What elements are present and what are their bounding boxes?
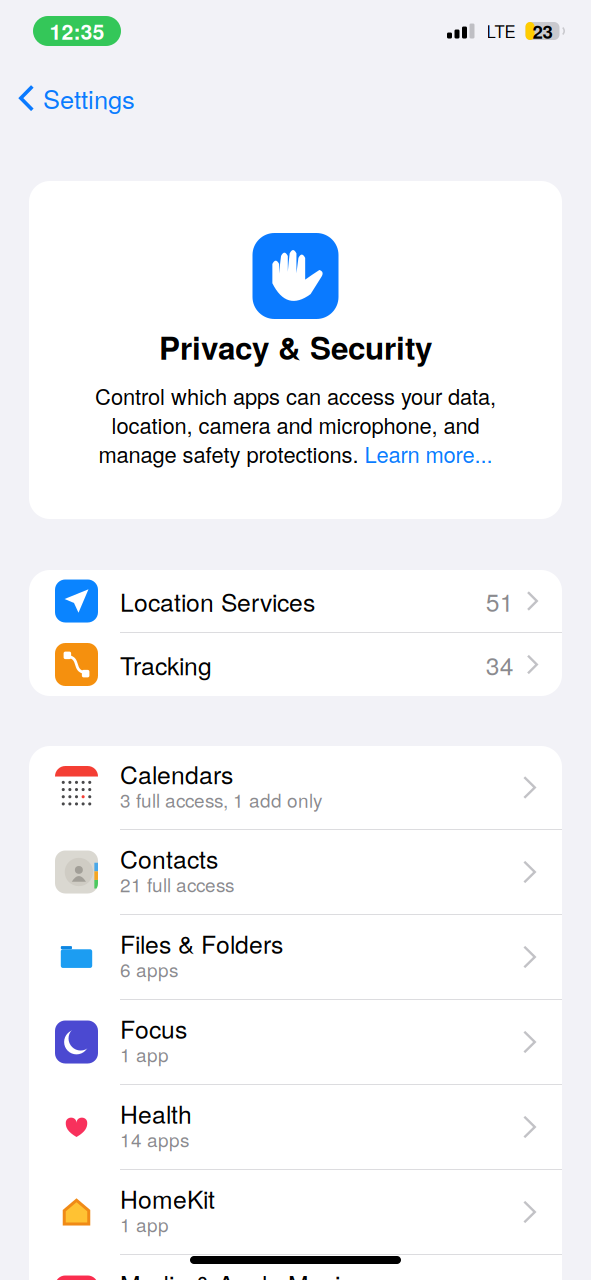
staticText: 14 apps <box>120 1125 189 1153</box>
staticText: Focus <box>120 1010 187 1046</box>
staticText: HomeKit <box>120 1180 215 1216</box>
staticText: 3 full access, 1 add only <box>120 786 322 813</box>
staticText: LTE <box>486 19 515 43</box>
staticText: Calendars <box>120 756 233 791</box>
staticText: Media & Apple Music <box>120 1265 352 1280</box>
staticText: 1 app <box>120 1210 169 1238</box>
staticText: Privacy & Security <box>159 324 432 370</box>
button[interactable]: Settings <box>0 62 149 129</box>
staticText: 6 apps <box>120 955 178 983</box>
staticText: Learn more... <box>364 438 492 469</box>
staticText: location, camera and microphone, and <box>111 409 479 440</box>
staticText: 51 <box>486 583 514 619</box>
staticText: Settings <box>43 80 135 116</box>
staticText: Control which apps can access your data, <box>95 380 496 411</box>
button[interactable]: Files & Folders <box>29 915 562 999</box>
staticText: 21 full access <box>120 870 234 898</box>
button[interactable]: Calendars <box>29 746 562 829</box>
staticText: Health <box>120 1095 192 1131</box>
staticText: Files & Folders <box>120 925 283 961</box>
staticText: 1 app <box>120 1040 169 1068</box>
button[interactable]: HomeKit <box>29 1170 562 1254</box>
button[interactable]: Contacts <box>29 830 562 914</box>
button[interactable]: Focus <box>29 1000 562 1084</box>
staticText: 12:35 <box>49 16 104 46</box>
staticText: manage safety protections. <box>98 438 364 469</box>
button[interactable]: Location Services <box>29 570 562 632</box>
staticText: Contacts <box>120 840 218 876</box>
staticText: 23 <box>532 18 552 44</box>
staticText: Location Services <box>120 583 315 619</box>
button[interactable]: Health <box>29 1085 562 1169</box>
button[interactable]: Tracking <box>29 633 562 696</box>
staticText: Tracking <box>120 647 212 682</box>
button[interactable]: Learn more... <box>364 438 492 469</box>
staticText: 34 <box>486 647 514 682</box>
button[interactable]: Media & Apple Music <box>29 1255 562 1280</box>
